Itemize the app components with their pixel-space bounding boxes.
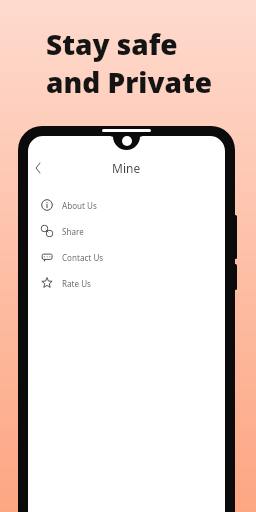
button[interactable]: Contact Us [28, 244, 225, 270]
button[interactable]: Rate Us [28, 270, 225, 296]
button[interactable]: About Us [28, 192, 225, 218]
staticText: Share [62, 226, 84, 237]
button[interactable]: Back [29, 159, 47, 177]
staticText: About Us [62, 200, 97, 211]
staticText: and Private [46, 63, 213, 101]
staticText: Stay safe [46, 25, 178, 63]
staticText: Rate Us [62, 278, 91, 289]
staticText: Contact Us [62, 252, 104, 263]
button[interactable]: Share [28, 218, 225, 244]
staticText: Mine [112, 160, 141, 176]
